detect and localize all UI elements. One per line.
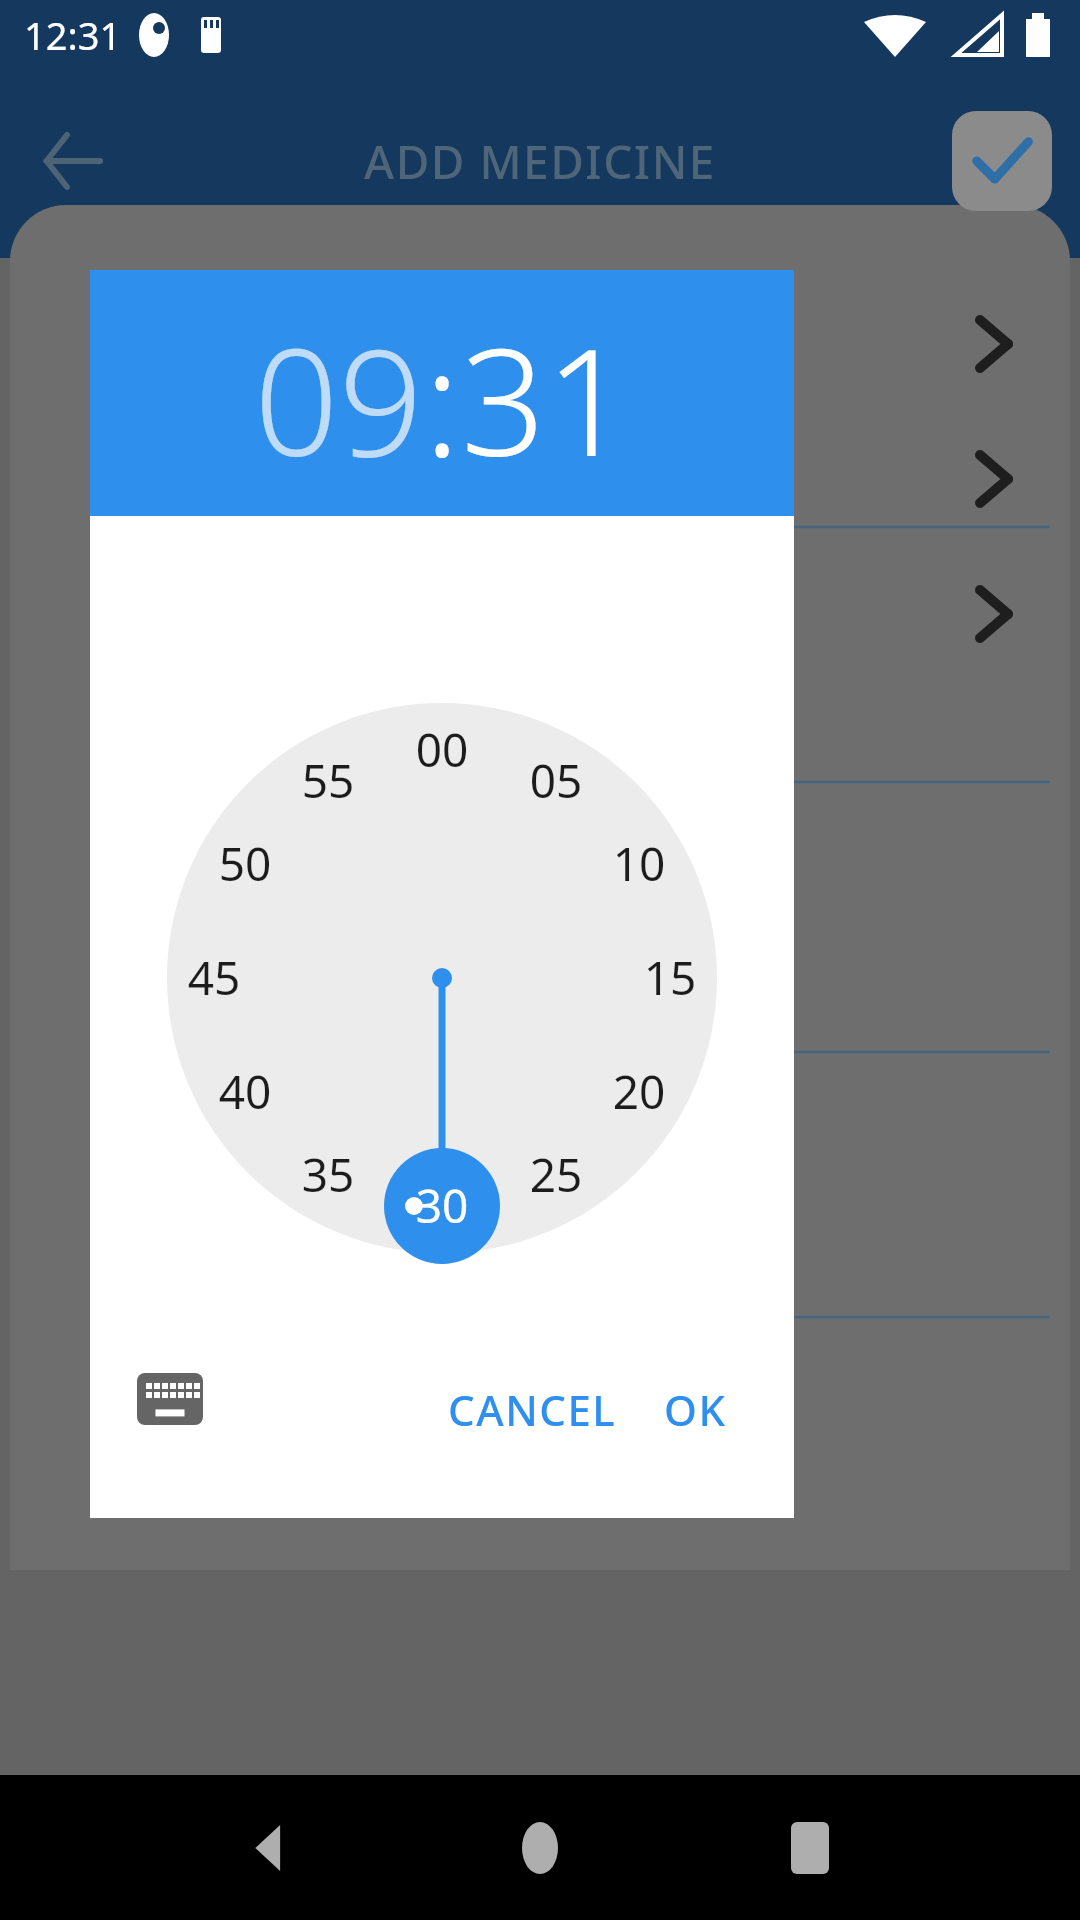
staticText: 10 (599, 832, 679, 895)
staticText: ADD MEDICINE (364, 130, 716, 193)
staticText: 50 (205, 832, 285, 895)
button[interactable]: 31 (461, 298, 631, 500)
button[interactable]: Back (18, 106, 128, 216)
button[interactable]: Home (480, 1788, 600, 1908)
staticText: 12:31 (24, 9, 122, 61)
staticText: 15 (630, 946, 710, 1009)
button[interactable]: Back (210, 1788, 330, 1908)
staticText: OK (664, 1381, 727, 1438)
staticText: 30 (402, 1174, 482, 1237)
staticText: 25 (516, 1143, 596, 1206)
button[interactable]: Recent apps (750, 1788, 870, 1908)
staticText: 45 (174, 946, 254, 1009)
staticText: 40 (205, 1060, 285, 1123)
staticText: CANCEL (448, 1381, 617, 1438)
staticText: 35 (288, 1143, 368, 1206)
button[interactable]: 09 (254, 298, 424, 500)
button[interactable] (90, 516, 794, 1343)
staticText: 55 (288, 749, 368, 812)
staticText: 05 (516, 749, 596, 812)
staticText: 09 (254, 298, 424, 500)
staticText: 00 (402, 718, 482, 781)
staticText: 31 (461, 298, 631, 500)
button[interactable]: Save (952, 111, 1052, 211)
staticText: : (424, 298, 461, 500)
button[interactable]: CANCEL (448, 1381, 617, 1438)
staticText: 20 (599, 1060, 679, 1123)
button[interactable]: OK (664, 1381, 727, 1438)
button[interactable]: Switch to keyboard input (122, 1351, 218, 1447)
